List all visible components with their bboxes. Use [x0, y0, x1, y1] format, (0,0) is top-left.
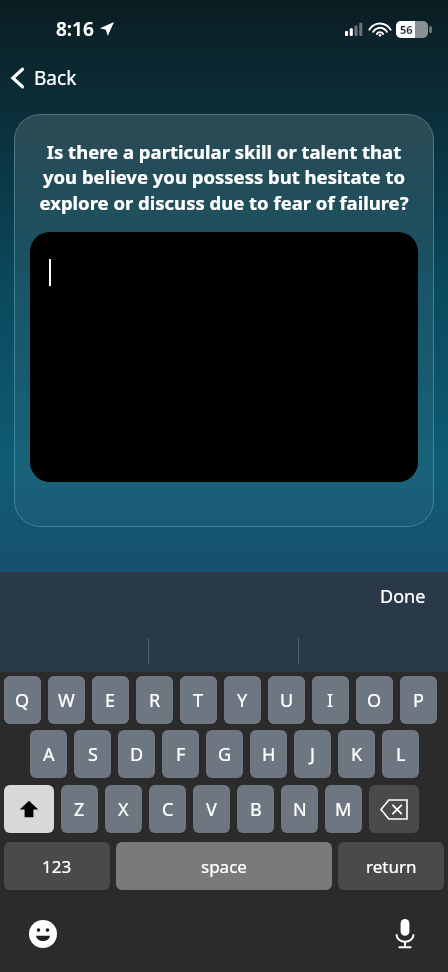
button[interactable]: Done — [374, 580, 432, 613]
button[interactable]: N — [281, 785, 318, 833]
button[interactable]: Backspace — [369, 785, 419, 833]
button[interactable]: space — [116, 842, 332, 890]
staticText: M — [335, 797, 352, 822]
staticText: U — [280, 688, 294, 713]
button[interactable]: D — [118, 730, 155, 778]
button[interactable]: Back — [10, 58, 77, 98]
button[interactable] — [30, 232, 418, 482]
staticText: Y — [237, 688, 248, 713]
staticText: H — [262, 742, 276, 767]
button[interactable]: H — [250, 730, 287, 778]
staticText: D — [130, 742, 144, 767]
button[interactable]: U — [268, 676, 305, 724]
staticText: return — [366, 855, 417, 878]
staticText: Back — [34, 65, 77, 91]
staticText: V — [206, 797, 217, 822]
button[interactable]: Dictation — [384, 913, 426, 955]
staticText: X — [118, 797, 129, 822]
staticText: G — [218, 742, 232, 767]
staticText: Is there a particular skill or talent th… — [31, 139, 417, 216]
staticText: 123 — [42, 855, 72, 878]
button[interactable]: P — [400, 676, 437, 724]
button[interactable]: Y — [224, 676, 261, 724]
button[interactable]: 123 — [4, 842, 110, 890]
staticText: 8:16 — [56, 16, 94, 42]
button[interactable]: B — [237, 785, 274, 833]
staticText: S — [88, 742, 98, 767]
staticText: E — [105, 688, 116, 713]
button[interactable]: S — [74, 730, 111, 778]
staticText: O — [367, 688, 382, 713]
staticText: W — [58, 688, 75, 713]
button[interactable]: L — [382, 730, 419, 778]
button[interactable]: W — [48, 676, 85, 724]
button[interactable]: X — [105, 785, 142, 833]
staticText: C — [162, 797, 174, 822]
button[interactable]: C — [149, 785, 186, 833]
button[interactable]: T — [180, 676, 217, 724]
staticText: 56 — [400, 22, 413, 37]
button[interactable]: I — [312, 676, 349, 724]
staticText: L — [396, 742, 406, 767]
button[interactable]: V — [193, 785, 230, 833]
button[interactable]: Z — [61, 785, 98, 833]
staticText: Z — [74, 797, 85, 822]
staticText: A — [43, 742, 55, 767]
button[interactable]: E — [92, 676, 129, 724]
staticText: space — [201, 855, 247, 878]
staticText: N — [293, 797, 307, 822]
button[interactable]: Q — [4, 676, 41, 724]
button[interactable]: F — [162, 730, 199, 778]
staticText: J — [310, 742, 315, 767]
staticText: Q — [15, 688, 30, 713]
button[interactable]: Emoji — [22, 913, 64, 955]
button[interactable]: K — [338, 730, 375, 778]
staticText: P — [413, 688, 424, 713]
button[interactable]: R — [136, 676, 173, 724]
staticText: Done — [380, 584, 426, 609]
staticText: T — [193, 688, 204, 713]
button[interactable]: G — [206, 730, 243, 778]
button[interactable]: Shift — [4, 785, 54, 833]
button[interactable]: A — [30, 730, 67, 778]
staticText: B — [250, 797, 262, 822]
staticText: I — [327, 688, 334, 713]
button[interactable]: return — [338, 842, 444, 890]
staticText: F — [176, 742, 186, 767]
button[interactable]: O — [356, 676, 393, 724]
button[interactable]: J — [294, 730, 331, 778]
staticText: R — [149, 688, 161, 713]
staticText: K — [351, 742, 363, 767]
button[interactable]: M — [325, 785, 362, 833]
